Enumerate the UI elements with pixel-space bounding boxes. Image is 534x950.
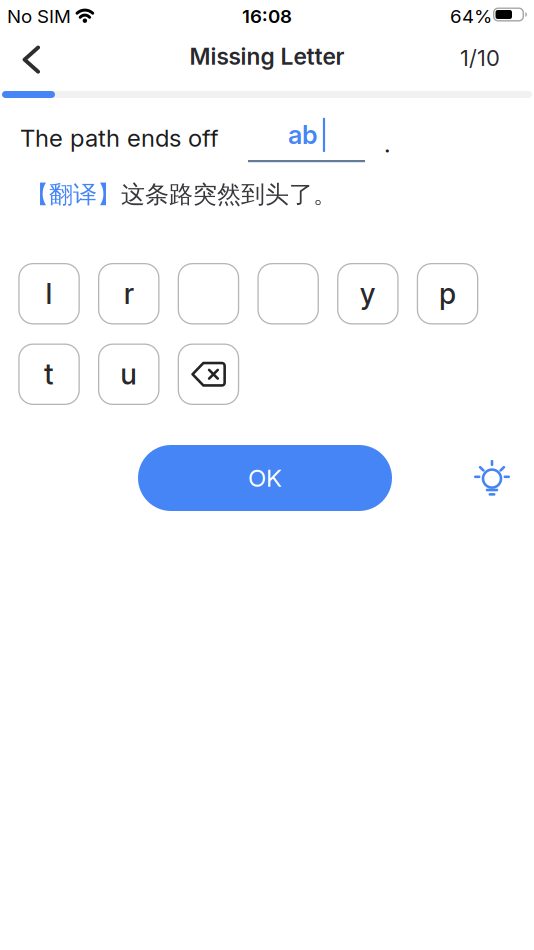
- staticText: p: [439, 277, 456, 311]
- button[interactable]: p: [417, 263, 478, 324]
- button[interactable]: Used letter: [178, 263, 239, 324]
- staticText: u: [120, 357, 137, 391]
- staticText: y: [360, 277, 376, 311]
- staticText: The path ends off: [20, 124, 219, 153]
- staticText: 16:08: [242, 5, 292, 27]
- button[interactable]: r: [98, 263, 159, 324]
- staticText: r: [124, 277, 134, 311]
- button[interactable]: OK: [138, 445, 392, 511]
- staticText: No SIM: [7, 5, 71, 27]
- staticText: l: [45, 277, 52, 311]
- staticText: t: [44, 357, 54, 391]
- button[interactable]: Backspace: [178, 343, 239, 405]
- staticText: Missing Letter: [189, 42, 344, 70]
- staticText: 这条路突然到头了。: [121, 179, 337, 210]
- staticText: ab: [288, 120, 318, 150]
- button[interactable]: l: [18, 263, 80, 324]
- staticText: 1/10: [460, 45, 500, 71]
- staticText: .: [384, 129, 391, 158]
- button[interactable]: u: [98, 343, 159, 405]
- staticText: 64%: [450, 5, 492, 27]
- button[interactable]: t: [18, 343, 80, 405]
- button[interactable]: Used letter: [257, 263, 319, 324]
- staticText: OK: [248, 463, 282, 492]
- button[interactable]: Back: [12, 35, 54, 84]
- button[interactable]: Hint: [470, 458, 514, 498]
- button[interactable]: y: [337, 263, 399, 324]
- staticText: 【翻译】: [25, 179, 121, 210]
